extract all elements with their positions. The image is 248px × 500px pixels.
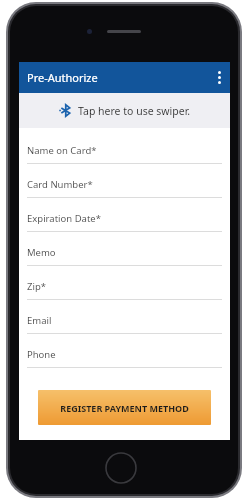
staticText: Card Number* (27, 178, 93, 191)
staticText: Phone (27, 348, 56, 361)
staticText: Expiration Date* (27, 212, 101, 225)
button[interactable]: Name on Card* (19, 138, 230, 172)
button[interactable]: Phone (19, 342, 230, 376)
button[interactable]: Zip* (19, 274, 230, 308)
button[interactable]: Card Number* (19, 172, 230, 206)
staticText: Name on Card* (27, 144, 97, 157)
staticText: Pre-Authorize (27, 70, 98, 85)
staticText: Tap here to use swiper. (78, 104, 191, 118)
button[interactable]: Email (19, 308, 230, 342)
button[interactable]: Memo (19, 240, 230, 274)
button[interactable]: Tap here to use swiper. (19, 93, 230, 128)
staticText: Memo (27, 246, 56, 259)
button[interactable]: More options (208, 62, 230, 93)
staticText: REGISTER PAYMENT METHOD (60, 402, 189, 414)
button[interactable]: REGISTER PAYMENT METHOD (38, 390, 211, 425)
button[interactable]: Home (105, 452, 137, 484)
staticText: Zip* (27, 280, 46, 293)
staticText: Email (27, 314, 52, 327)
button[interactable]: Expiration Date* (19, 206, 230, 240)
